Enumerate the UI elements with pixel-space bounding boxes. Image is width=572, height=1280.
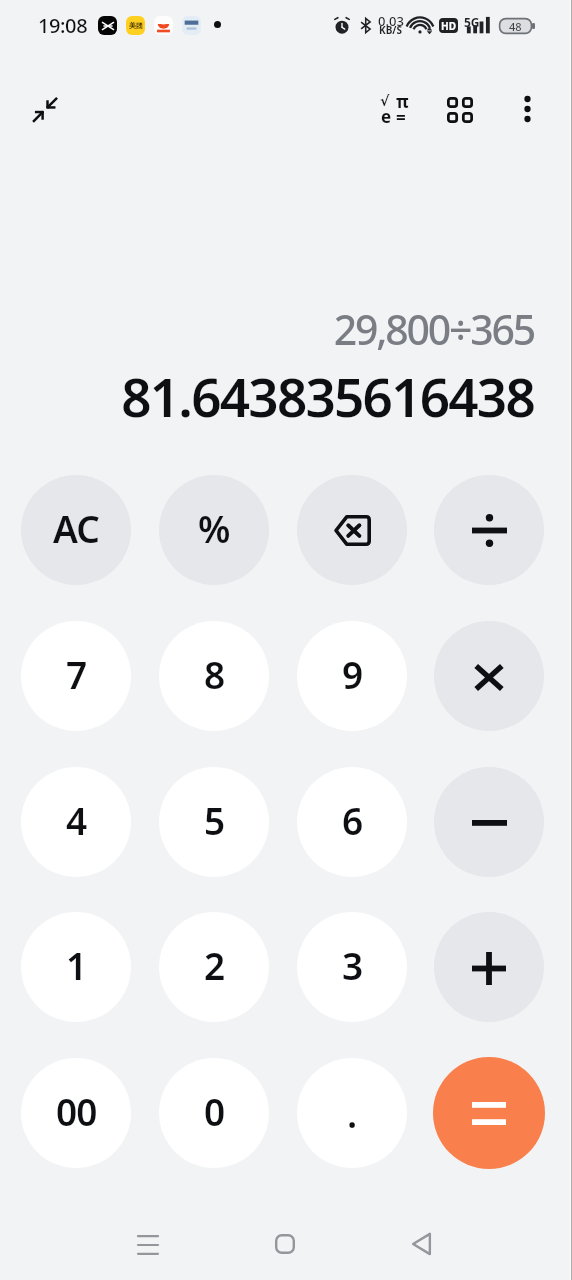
button[interactable]: Back [393, 1216, 449, 1272]
button[interactable]: 00 [21, 1058, 131, 1168]
staticText: 7 [66, 649, 87, 699]
staticText: 29,800÷365 [333, 301, 534, 357]
button[interactable]: 5 [159, 767, 269, 877]
button[interactable]: 8 [159, 621, 269, 731]
staticText: 5 [204, 795, 225, 845]
button[interactable]: 3 [297, 912, 407, 1022]
staticText: √ [380, 93, 390, 109]
button[interactable]: 2 [159, 912, 269, 1022]
staticText: 0.03 [378, 12, 404, 30]
button[interactable]: 0 [159, 1058, 269, 1168]
staticText: 81.643835616438 [121, 360, 534, 432]
button[interactable]: Equals [433, 1057, 545, 1169]
staticText: 19:08 [38, 12, 88, 39]
staticText: e [381, 105, 392, 128]
staticText: 3 [342, 940, 363, 990]
staticText: 美团 [129, 21, 143, 30]
button[interactable]: Recents [120, 1216, 176, 1272]
button[interactable]: AC [21, 475, 131, 585]
button[interactable]: 6 [297, 767, 407, 877]
button[interactable]: Collapse [20, 85, 70, 135]
staticText: 4 [66, 795, 87, 845]
button[interactable]: Subtract [434, 767, 544, 877]
staticText: HD [441, 19, 456, 33]
staticText: 6 [342, 795, 363, 845]
button[interactable]: Scientific keypad [368, 85, 420, 137]
staticText: 5G [464, 14, 480, 30]
staticText: AC [53, 503, 100, 553]
button[interactable]: % [159, 475, 269, 585]
button[interactable]: Home [257, 1216, 313, 1272]
staticText: = [396, 106, 406, 129]
button[interactable]: More options [503, 85, 551, 133]
staticText: 00 [56, 1086, 97, 1136]
staticText: 48 [509, 19, 522, 34]
staticText: 1 [66, 940, 87, 990]
button[interactable]: 4 [21, 767, 131, 877]
staticText: 0 [204, 1086, 225, 1136]
button[interactable]: 9 [297, 621, 407, 731]
button[interactable]: 7 [21, 621, 131, 731]
button[interactable]: Divide [434, 475, 544, 585]
staticText: 2 [204, 940, 225, 990]
button[interactable]: . [297, 1058, 407, 1168]
staticText: . [347, 1088, 357, 1138]
button[interactable]: Backspace [297, 475, 407, 585]
button[interactable]: Multiply [434, 621, 544, 731]
button[interactable]: Apps [435, 85, 485, 135]
button[interactable]: Add [434, 912, 544, 1022]
staticText: 9 [342, 649, 363, 699]
staticText: 8 [204, 649, 225, 699]
staticText: KB/S [379, 23, 402, 37]
staticText: % [198, 503, 230, 553]
button[interactable]: 1 [21, 912, 131, 1022]
staticText: π [396, 90, 409, 113]
